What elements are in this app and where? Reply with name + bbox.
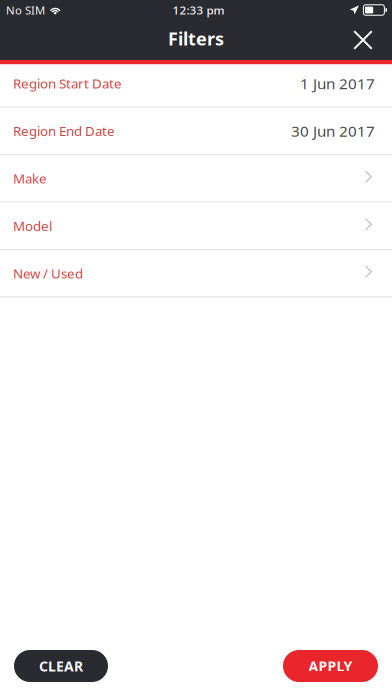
button[interactable]: Region Start Date xyxy=(0,60,392,107)
staticText: Region Start Date xyxy=(13,74,122,92)
staticText: Region End Date xyxy=(13,122,115,140)
staticText: 1 Jun 2017 xyxy=(300,73,375,94)
staticText: No SIM xyxy=(6,2,45,18)
staticText: APPLY xyxy=(308,656,352,676)
button[interactable]: CLEAR xyxy=(14,650,108,682)
staticText: Filters xyxy=(168,26,224,51)
button[interactable]: Model xyxy=(0,202,392,250)
button[interactable]: New / Used xyxy=(0,250,392,297)
button[interactable]: Make xyxy=(0,155,392,202)
button[interactable]: APPLY xyxy=(283,650,378,682)
staticText: Make xyxy=(13,169,47,187)
staticText: 12:33 pm xyxy=(172,2,224,18)
button[interactable]: Region End Date xyxy=(0,107,392,155)
staticText: CLEAR xyxy=(39,656,83,676)
button[interactable]: Close xyxy=(340,20,386,60)
staticText: Model xyxy=(13,217,52,235)
staticText: New / Used xyxy=(13,264,83,282)
staticText: 30 Jun 2017 xyxy=(291,120,375,141)
